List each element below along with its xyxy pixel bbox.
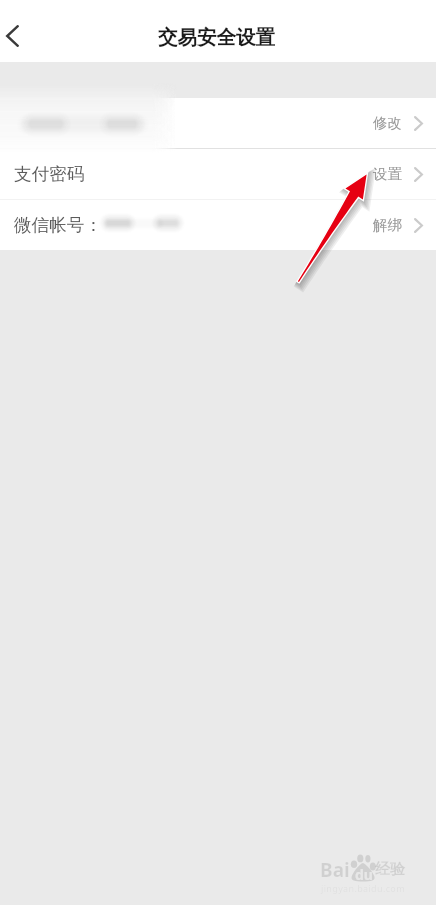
staticText: 交易安全设置 — [158, 25, 275, 50]
staticText: 微信帐号： — [14, 214, 102, 236]
staticText: 修改 — [373, 114, 402, 132]
button[interactable]: 微信帐号： — [0, 200, 436, 250]
button[interactable]: 支付密码 — [0, 149, 436, 199]
button[interactable]: Back — [0, 14, 34, 58]
staticText: 设置 — [373, 165, 402, 183]
staticText: 解绑 — [373, 216, 402, 234]
button[interactable]: 手机号 修改 — [0, 98, 436, 148]
staticText: du — [355, 865, 373, 884]
staticText: 经验 — [375, 860, 405, 879]
staticText: 支付密码 — [14, 163, 85, 185]
staticText: Bai — [320, 857, 350, 883]
